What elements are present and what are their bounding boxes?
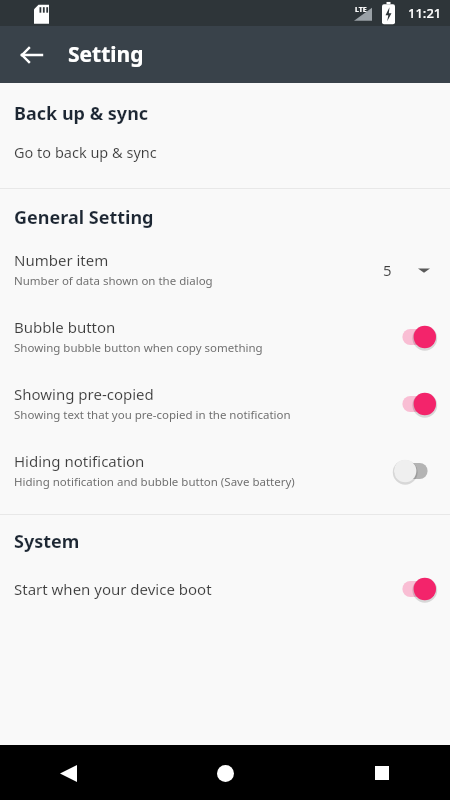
staticText: Showing pre-copied: [14, 384, 154, 404]
staticText: Start when your device boot: [14, 579, 212, 599]
button[interactable]: Back: [44, 749, 92, 797]
staticText: Bubble button: [14, 317, 116, 337]
button[interactable]: Showing pre-copied: [0, 370, 450, 437]
staticText: System: [14, 529, 80, 554]
staticText: Hiding notification and bubble button (S…: [14, 474, 295, 490]
staticText: Setting: [68, 40, 144, 69]
button[interactable]: Number item: [0, 236, 450, 303]
staticText: Back up & sync: [14, 101, 149, 126]
staticText: General Setting: [14, 205, 154, 230]
button[interactable]: Off: [394, 458, 436, 484]
staticText: Hiding notification: [14, 451, 145, 471]
button[interactable]: On: [394, 324, 436, 350]
staticText: Showing bubble button when copy somethin…: [14, 340, 263, 356]
staticText: Number of data shown on the dialog: [14, 273, 213, 289]
button[interactable]: Go to back up & sync: [0, 130, 450, 188]
staticText: Number item: [14, 250, 109, 270]
button[interactable]: Back: [12, 35, 52, 75]
staticText: 11:21: [408, 4, 442, 22]
staticText: LTE: [355, 5, 367, 15]
button[interactable]: On: [394, 576, 436, 602]
staticText: 5: [383, 260, 392, 280]
button[interactable]: Start when your device boot: [0, 562, 450, 616]
button[interactable]: Bubble button: [0, 303, 450, 370]
button[interactable]: Home: [201, 749, 249, 797]
button[interactable]: Recents: [358, 749, 406, 797]
staticText: Go to back up & sync: [14, 142, 157, 162]
button[interactable]: Hiding notification: [0, 437, 450, 504]
button[interactable]: On: [394, 391, 436, 417]
staticText: Showing text that you pre-copied in the …: [14, 407, 291, 423]
